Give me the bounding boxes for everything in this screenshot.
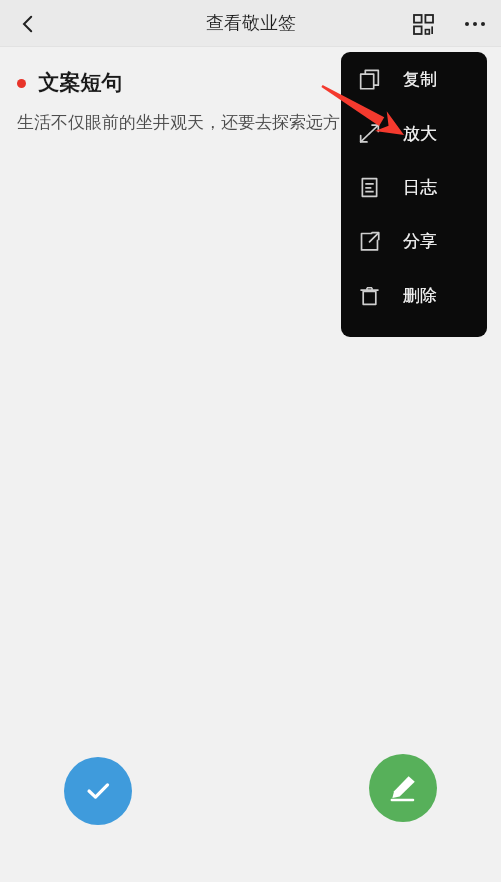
button[interactable]: Delete xyxy=(341,268,487,322)
button[interactable]: Share xyxy=(341,214,487,268)
button[interactable]: Enlarge xyxy=(341,106,487,160)
button[interactable]: Edit xyxy=(369,754,437,822)
button[interactable]: Grid view xyxy=(401,2,445,46)
staticText: 删除 xyxy=(403,285,437,306)
button[interactable]: Back xyxy=(4,0,52,47)
button[interactable]: Log xyxy=(341,160,487,214)
staticText: 生活不仅眼前的坐井观天，还要去探索远方 xyxy=(17,112,340,133)
staticText: 日志 xyxy=(403,177,437,198)
staticText: 分享 xyxy=(403,231,437,252)
staticText: 文案短句 xyxy=(38,70,122,96)
staticText: 复制 xyxy=(403,69,437,90)
button[interactable]: Confirm xyxy=(64,757,132,825)
button[interactable]: More options xyxy=(453,2,497,46)
staticText: 查看敬业签 xyxy=(206,12,296,35)
button[interactable]: Copy xyxy=(341,52,487,106)
staticText: 放大 xyxy=(403,123,437,144)
